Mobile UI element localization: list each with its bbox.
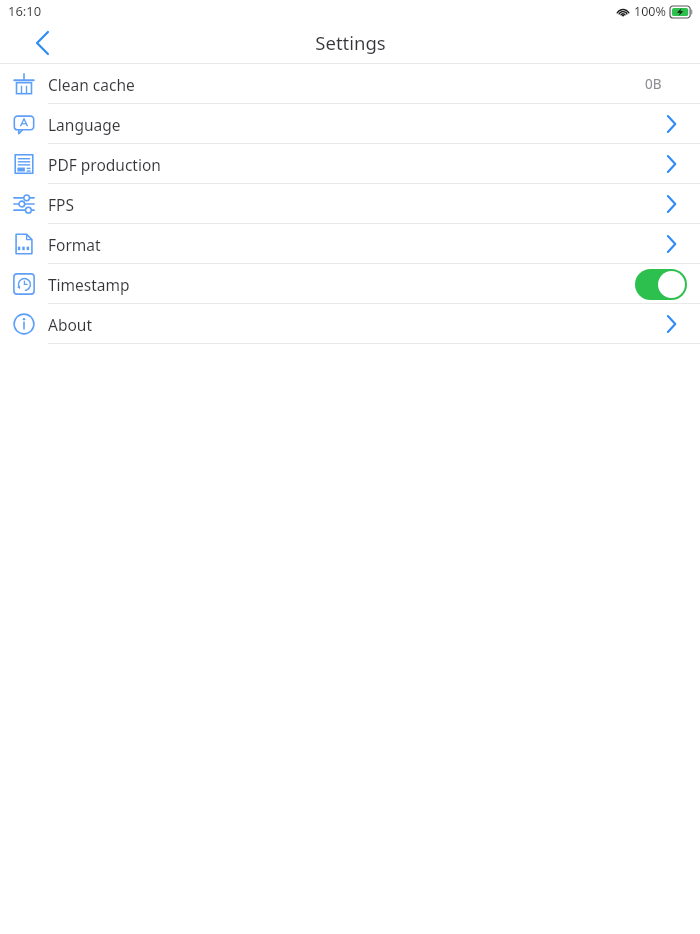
button[interactable]: PDF production [0,144,700,184]
button[interactable]: FPS [0,184,700,224]
staticText: Clean cache [48,74,645,95]
button[interactable]: Timestamp toggle [635,269,687,300]
staticText: FPS [48,194,660,215]
button[interactable]: Back [22,23,62,63]
button[interactable]: Format [0,224,700,264]
staticText: 100% [634,3,666,20]
button[interactable]: Clean cache [0,64,700,104]
staticText: PDF production [48,154,660,175]
staticText: Timestamp [48,274,635,295]
button[interactable]: Language [0,104,700,144]
staticText: 0B [645,75,662,93]
button[interactable]: About [0,304,700,344]
staticText: Format [48,234,660,255]
staticText: About [48,314,660,335]
staticText: Language [48,114,660,135]
button[interactable]: Timestamp [0,264,700,304]
staticText: 16:10 [8,2,42,20]
staticText: Settings [315,30,386,55]
